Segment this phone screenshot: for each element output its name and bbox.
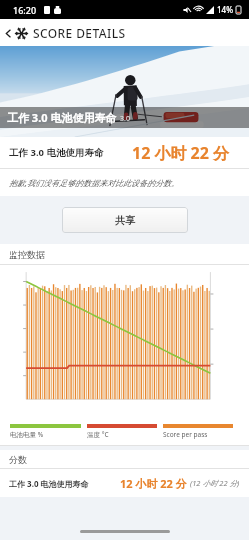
button[interactable]: 工作 3.0 电池使用寿命	[0, 469, 249, 497]
staticText: 14%	[217, 4, 233, 15]
staticText: SCORE DETAILS	[33, 25, 126, 41]
staticText: 电池电量 %	[10, 430, 44, 439]
staticText: 抱歉,我们没有足够的数据来对比此设备的分数。	[9, 177, 180, 188]
staticText: 监控数据	[9, 249, 45, 260]
staticText: 分数	[9, 454, 27, 465]
staticText: 12 小时 22 分	[132, 142, 230, 164]
staticText: Score per pass	[163, 430, 208, 439]
staticText: 3.0	[120, 114, 130, 124]
button[interactable]: Back	[0, 22, 132, 44]
staticText: 共享	[115, 214, 135, 227]
staticText: 工作 3.0 电池使用寿命	[7, 110, 117, 125]
staticText: 温度 °C	[87, 430, 109, 439]
staticText: (12 小时 22 分)	[190, 478, 240, 488]
staticText: 工作 3.0 电池使用寿命	[9, 146, 104, 159]
staticText: 工作 3.0 电池使用寿命	[9, 478, 89, 489]
staticText: 16:20	[13, 4, 37, 16]
staticText: 12 小时 22 分	[120, 476, 187, 491]
button[interactable]: 共享	[62, 207, 188, 233]
